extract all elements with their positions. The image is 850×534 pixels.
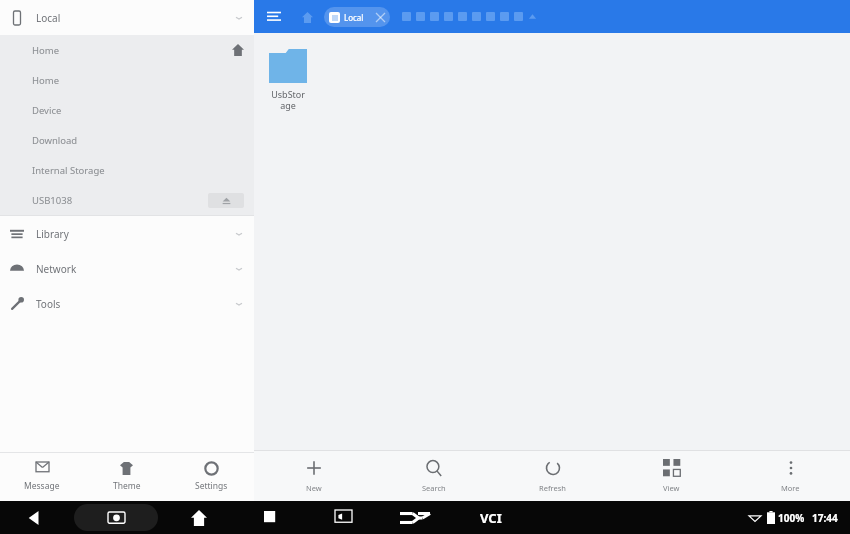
staticText: Search — [422, 483, 446, 493]
staticText: Download — [32, 134, 78, 147]
button[interactable]: Home — [298, 8, 316, 26]
staticText: Message — [24, 480, 60, 492]
button[interactable]: Volume — [330, 505, 356, 531]
button[interactable]: Tools — [0, 286, 254, 321]
button[interactable]: Home — [0, 65, 254, 95]
staticText: Local — [36, 11, 61, 25]
staticText: Refresh — [539, 483, 566, 493]
button[interactable]: Menu — [264, 7, 284, 27]
button[interactable]: Local — [0, 0, 254, 35]
staticText: Theme — [113, 480, 141, 492]
button[interactable]: VCI — [474, 509, 508, 527]
button[interactable]: Download — [0, 125, 254, 155]
button[interactable]: Device — [0, 95, 254, 125]
button[interactable]: DP — [398, 501, 432, 534]
button[interactable]: Internal Storage — [0, 155, 254, 185]
staticText: Home — [32, 74, 60, 87]
button[interactable]: Library — [0, 216, 254, 251]
staticText: Network — [36, 262, 77, 276]
button[interactable]: Search — [374, 451, 493, 501]
button[interactable]: USB1038 — [0, 185, 254, 215]
button[interactable]: Eject USB1038 — [208, 193, 244, 208]
button[interactable]: Message — [0, 453, 84, 501]
staticText: Home — [32, 44, 60, 57]
staticText: Library — [36, 227, 69, 241]
button[interactable]: More — [731, 451, 850, 501]
staticText: USB1038 — [32, 194, 73, 207]
button[interactable]: Network — [0, 251, 254, 286]
staticText: Tools — [36, 297, 61, 311]
button[interactable]: UsbStorage — [260, 49, 316, 111]
staticText: VCI — [480, 509, 502, 527]
staticText: 17:44 — [812, 511, 838, 525]
staticText: New — [306, 483, 322, 493]
button[interactable]: Home — [0, 35, 254, 65]
staticText: View — [663, 483, 680, 493]
staticText: Settings — [195, 480, 228, 492]
button[interactable]: Back — [22, 505, 48, 531]
button[interactable]: Theme — [84, 453, 169, 501]
button[interactable]: Screenshot — [74, 504, 158, 531]
staticText: Local — [344, 12, 364, 23]
button[interactable]: Recents — [258, 505, 284, 531]
button[interactable]: Refresh — [493, 451, 612, 501]
staticText: 100% — [778, 511, 805, 525]
button[interactable]: View — [612, 451, 731, 501]
button[interactable]: Home — [186, 505, 212, 531]
staticText: Internal Storage — [32, 164, 105, 177]
button[interactable]: Local — [324, 7, 390, 27]
staticText: Device — [32, 104, 62, 117]
button[interactable]: New — [254, 451, 374, 501]
staticText: More — [781, 483, 800, 493]
button[interactable]: Settings — [169, 453, 254, 501]
staticText: UsbStorage — [271, 88, 305, 111]
